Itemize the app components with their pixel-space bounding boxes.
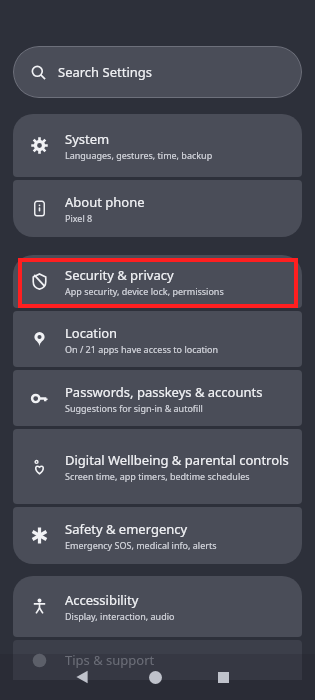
button[interactable]: System (13, 114, 302, 177)
button[interactable]: Location (13, 311, 302, 367)
staticText: About phone (65, 193, 145, 211)
button[interactable]: Home (135, 657, 175, 697)
staticText: Security & privacy (65, 266, 174, 284)
staticText: Digital Wellbeing & parental controls (65, 451, 289, 469)
button[interactable]: Recent apps (203, 657, 243, 697)
staticText: Pixel 8 (65, 212, 93, 224)
staticText: On / 21 apps have access to location (65, 343, 219, 355)
staticText: App security, device lock, permissions (65, 285, 224, 297)
staticText: Emergency SOS, medical info, alerts (65, 539, 217, 551)
staticText: System (65, 130, 110, 148)
staticText: Languages, gestures, time, backup (65, 149, 213, 161)
button[interactable]: Security & privacy (13, 255, 302, 308)
staticText: Accessibility (65, 591, 139, 609)
button[interactable]: Safety & emergency (13, 507, 302, 564)
button[interactable]: Passwords, passkeys & accounts (13, 370, 302, 426)
button[interactable]: Digital Wellbeing & parental controls (13, 429, 302, 504)
button[interactable]: About phone (13, 180, 302, 237)
staticText: Safety & emergency (65, 520, 188, 538)
button[interactable]: Back (62, 657, 102, 697)
staticText: Suggestions for sign-in & autofill (65, 402, 203, 414)
staticText: Screen time, app timers, bedtime schedul… (65, 470, 250, 482)
staticText: Search Settings (58, 63, 152, 81)
staticText: Display, interaction, audio (65, 610, 175, 622)
staticText: Location (65, 324, 118, 342)
staticText: Tips & support (65, 651, 155, 669)
button[interactable]: Search Settings (13, 46, 302, 98)
button[interactable]: Tips & support (13, 640, 302, 680)
button[interactable]: Accessibility (13, 576, 302, 637)
staticText: Passwords, passkeys & accounts (65, 383, 263, 401)
